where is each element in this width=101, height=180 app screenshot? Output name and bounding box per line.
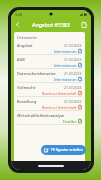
button[interactable]: Erstellen [63,119,82,123]
staticText: AGB [17,57,64,62]
staticText: 21.03.2023 [64,85,82,90]
staticText: PV Signatur erstellen [51,148,83,152]
button[interactable]: Informationen [54,49,82,53]
staticText: 21.03.2023 [64,71,82,76]
button[interactable]: Bereit zur Unterschrift [42,105,82,109]
staticText: Erstellen [63,119,77,123]
staticText: Bereit zur Unterschrift [42,105,77,109]
staticText: 9:24 [15,12,23,17]
staticText: Informationen [54,63,77,67]
button[interactable]: Bestellung [17,98,82,112]
staticText: Dokumente [17,35,37,40]
button[interactable]: Informationen [54,77,82,81]
staticText: 21.03.2023 [64,57,82,62]
button[interactable]: Bereit zur Unterschrift [42,91,82,95]
staticText: 21.03.2023 [64,99,82,104]
button[interactable]: Wirtschaftlichkeitsanalyse [17,112,82,126]
staticText: Angebot #5383 [32,21,70,28]
staticText: Datenschutzhinweise [17,71,64,76]
staticText: Bestellung [17,99,64,104]
staticText: Informationen [54,49,77,53]
button[interactable]: AGB [17,56,82,70]
staticText: Angebot [17,43,64,48]
button[interactable]: Angebot [17,42,82,56]
button[interactable]: Dokument [78,19,89,30]
button[interactable]: Vollmacht [17,84,82,98]
button[interactable]: Back [12,19,23,30]
button[interactable]: Datenschutzhinweise [17,70,82,84]
staticText: Informationen [54,77,77,81]
staticText: Bereit zur Unterschrift [42,91,77,95]
button[interactable]: Informationen [54,63,82,67]
staticText: Vollmacht [17,85,64,90]
button[interactable]: PV Signatur erstellen [41,145,86,155]
staticText: Wirtschaftlichkeitsanalyse [17,113,82,118]
staticText: 21.03.2023 [64,43,82,48]
